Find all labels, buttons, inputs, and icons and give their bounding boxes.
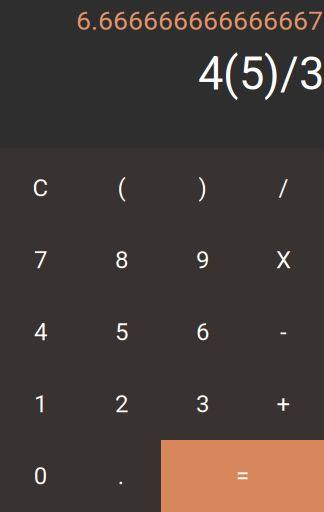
button[interactable]: C <box>0 152 81 224</box>
button[interactable]: X <box>243 224 324 296</box>
button[interactable]: 8 <box>81 224 162 296</box>
button[interactable]: ) <box>162 152 243 224</box>
button[interactable]: 4 <box>0 296 81 368</box>
button[interactable]: - <box>243 296 324 368</box>
staticText: + <box>276 390 290 418</box>
staticText: 2 <box>115 390 128 418</box>
staticText: / <box>278 174 288 202</box>
staticText: 7 <box>34 246 47 274</box>
staticText: - <box>280 318 287 346</box>
staticText: 1 <box>34 390 47 418</box>
button[interactable]: = <box>161 440 324 512</box>
staticText: 0 <box>34 462 47 490</box>
staticText: = <box>236 462 249 490</box>
button[interactable]: 2 <box>81 368 162 440</box>
button[interactable]: . <box>80 440 161 512</box>
staticText: 6 <box>196 318 209 346</box>
staticText: 4(5)/3 <box>198 47 324 101</box>
staticText: ) <box>198 174 206 202</box>
staticText: X <box>276 246 291 274</box>
button[interactable]: 3 <box>162 368 243 440</box>
staticText: C <box>32 174 48 202</box>
button[interactable]: 9 <box>162 224 243 296</box>
staticText: 8 <box>115 246 128 274</box>
button[interactable]: 0 <box>0 440 80 512</box>
button[interactable]: 5 <box>81 296 162 368</box>
button[interactable]: 1 <box>0 368 81 440</box>
staticText: 6.666666666666667 <box>76 5 323 36</box>
staticText: 9 <box>196 246 209 274</box>
staticText: 4 <box>34 318 47 346</box>
staticText: . <box>118 462 124 490</box>
staticText: 3 <box>196 390 209 418</box>
button[interactable]: / <box>243 152 324 224</box>
staticText: 5 <box>115 318 128 346</box>
button[interactable]: 7 <box>0 224 81 296</box>
button[interactable]: 6 <box>162 296 243 368</box>
button[interactable]: ( <box>81 152 162 224</box>
button[interactable]: + <box>243 368 324 440</box>
staticText: ( <box>117 174 125 202</box>
